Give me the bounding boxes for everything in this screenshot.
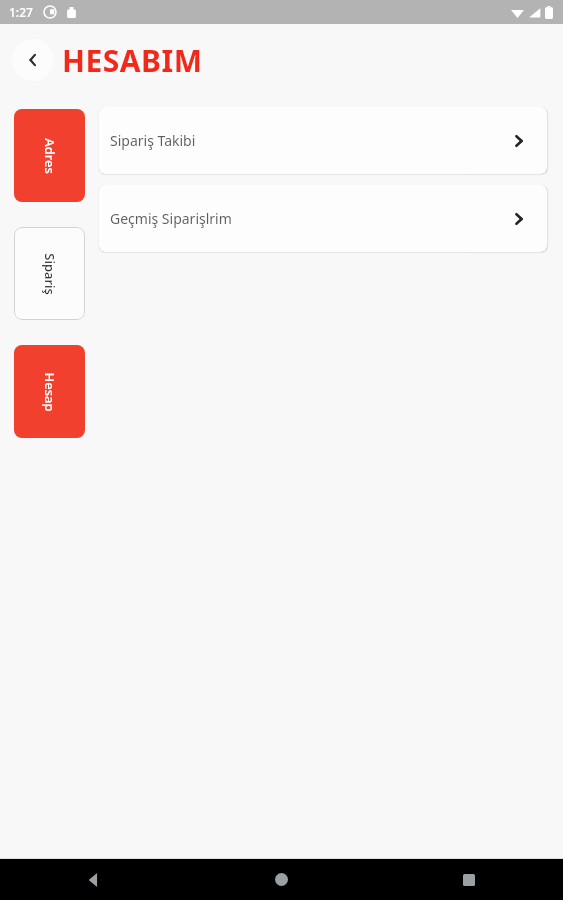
- button[interactable]: Recent apps: [375, 859, 563, 900]
- staticText: 1:27: [9, 4, 33, 20]
- button[interactable]: Adres: [14, 109, 85, 202]
- staticText: Sipariş: [41, 253, 59, 295]
- button[interactable]: Sipariş Takibi: [99, 107, 547, 174]
- staticText: HESABIM: [62, 40, 203, 81]
- staticText: Sipariş Takibi: [110, 131, 196, 150]
- staticText: Hesap: [41, 372, 59, 412]
- button[interactable]: Back: [12, 39, 54, 81]
- button[interactable]: Geçmiş Siparişlrim: [99, 185, 547, 252]
- staticText: Geçmiş Siparişlrim: [110, 209, 232, 228]
- button[interactable]: Sipariş: [14, 227, 85, 320]
- staticText: Adres: [41, 138, 59, 174]
- button[interactable]: Back: [0, 859, 187, 900]
- button[interactable]: Home: [187, 859, 375, 900]
- button[interactable]: Hesap: [14, 345, 85, 438]
